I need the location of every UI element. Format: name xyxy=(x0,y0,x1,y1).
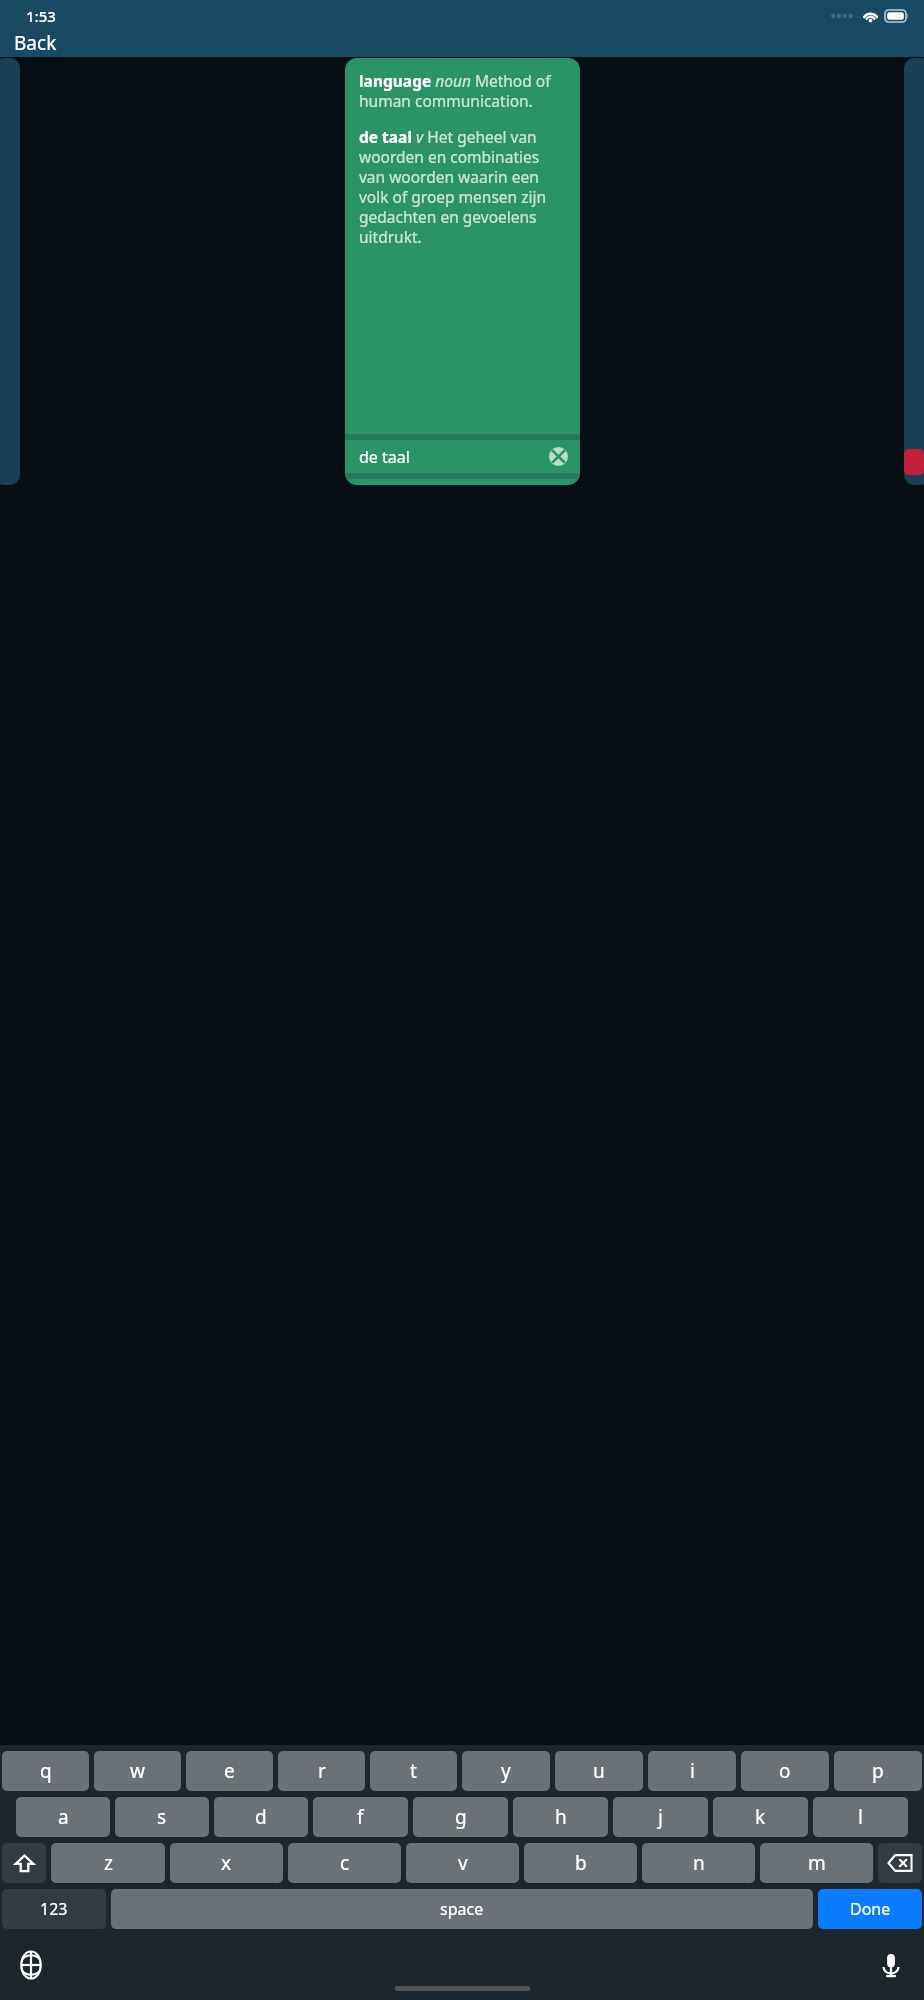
staticText: u xyxy=(593,1758,605,1784)
staticText: de taal v Het geheel van woorden en comb… xyxy=(359,126,568,248)
button[interactable]: j xyxy=(613,1797,708,1837)
button[interactable]: m xyxy=(760,1843,873,1883)
button[interactable]: f xyxy=(313,1797,408,1837)
button[interactable]: Backspace xyxy=(878,1843,922,1883)
staticText: m xyxy=(808,1850,826,1876)
button[interactable]: g xyxy=(413,1797,508,1837)
staticText: r xyxy=(318,1758,326,1784)
button[interactable]: a xyxy=(16,1797,110,1837)
staticText: x xyxy=(221,1850,232,1876)
staticText: h xyxy=(555,1804,567,1830)
staticText: space xyxy=(440,1898,484,1920)
button[interactable]: p xyxy=(834,1751,922,1791)
button[interactable]: Done xyxy=(818,1889,922,1929)
button[interactable]: space xyxy=(111,1889,813,1929)
button[interactable] xyxy=(904,58,924,485)
staticText: de taal xyxy=(359,446,549,468)
staticText: 1:53 xyxy=(26,6,56,26)
button[interactable]: y xyxy=(462,1751,550,1791)
staticText: d xyxy=(255,1804,267,1830)
staticText: v xyxy=(458,1850,468,1876)
button[interactable]: Shift xyxy=(2,1843,46,1883)
staticText: b xyxy=(575,1850,587,1876)
button[interactable]: l xyxy=(813,1797,908,1837)
button[interactable]: u xyxy=(555,1751,643,1791)
button[interactable]: z xyxy=(51,1843,165,1883)
button[interactable]: k xyxy=(713,1797,808,1837)
staticText: g xyxy=(455,1804,467,1830)
staticText: a xyxy=(58,1804,69,1830)
button[interactable]: 123 xyxy=(2,1889,106,1929)
staticText: Back xyxy=(14,30,57,56)
button[interactable]: Change keyboard language xyxy=(16,1950,46,1980)
button[interactable]: q xyxy=(2,1751,89,1791)
staticText: Done xyxy=(850,1898,891,1920)
staticText: language noun Method of human communicat… xyxy=(359,70,568,112)
button[interactable]: n xyxy=(642,1843,755,1883)
staticText: j xyxy=(658,1804,663,1830)
staticText: t xyxy=(410,1758,417,1784)
staticText: k xyxy=(755,1804,766,1830)
staticText: p xyxy=(872,1758,884,1784)
staticText: 123 xyxy=(40,1898,68,1920)
button[interactable]: d xyxy=(214,1797,308,1837)
button[interactable] xyxy=(0,58,20,485)
button[interactable]: s xyxy=(115,1797,209,1837)
button[interactable]: x xyxy=(170,1843,283,1883)
button[interactable]: t xyxy=(370,1751,457,1791)
staticText: z xyxy=(104,1850,113,1876)
staticText: s xyxy=(157,1804,167,1830)
staticText: f xyxy=(357,1804,364,1830)
staticText: y xyxy=(501,1758,511,1784)
button[interactable]: de taal xyxy=(345,440,580,473)
button[interactable]: c xyxy=(288,1843,401,1883)
button[interactable]: b xyxy=(524,1843,637,1883)
button[interactable]: Back xyxy=(0,28,924,57)
staticText: l xyxy=(858,1804,863,1830)
button[interactable]: o xyxy=(741,1751,829,1791)
button[interactable]: r xyxy=(278,1751,365,1791)
button[interactable]: w xyxy=(94,1751,181,1791)
staticText: i xyxy=(690,1758,695,1784)
staticText: w xyxy=(130,1758,145,1784)
button[interactable]: Voice input xyxy=(876,1950,906,1980)
button[interactable]: i xyxy=(648,1751,736,1791)
button[interactable]: e xyxy=(186,1751,273,1791)
button[interactable]: v xyxy=(406,1843,519,1883)
staticText: o xyxy=(779,1758,791,1784)
staticText: c xyxy=(340,1850,350,1876)
staticText: n xyxy=(693,1850,705,1876)
button[interactable]: h xyxy=(513,1797,608,1837)
button[interactable]: Clear text xyxy=(549,447,568,466)
staticText: e xyxy=(224,1758,235,1784)
staticText: q xyxy=(40,1758,52,1784)
